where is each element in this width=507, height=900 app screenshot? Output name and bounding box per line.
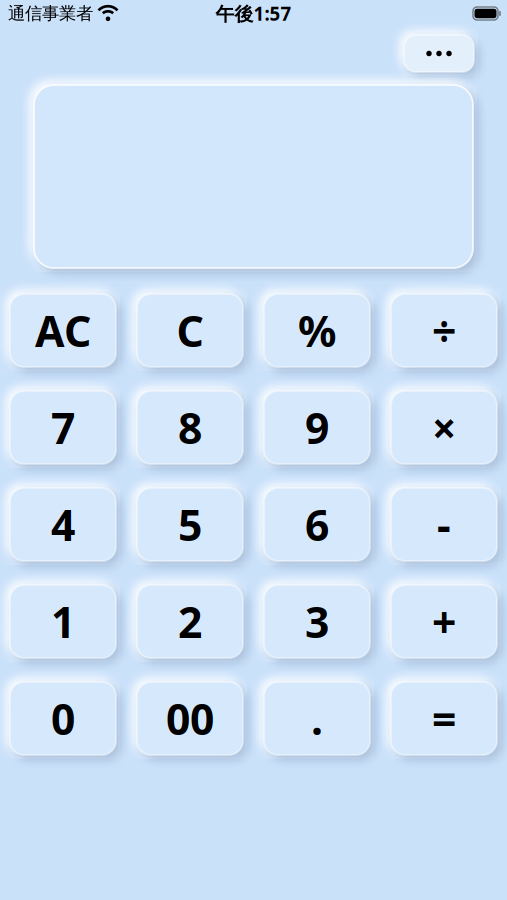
staticText: 7 <box>51 399 75 456</box>
button[interactable]: × <box>391 391 497 464</box>
staticText: 1 <box>51 593 75 650</box>
staticText: 2 <box>178 593 202 650</box>
button[interactable]: 3 <box>264 585 370 658</box>
staticText: C <box>176 302 203 359</box>
button[interactable]: = <box>391 682 497 755</box>
button[interactable]: 8 <box>137 391 243 464</box>
button[interactable]: . <box>264 682 370 755</box>
button[interactable] <box>404 35 474 72</box>
staticText: 8 <box>178 399 202 456</box>
staticText: - <box>437 496 451 553</box>
staticText: 0 <box>51 690 75 747</box>
button[interactable]: - <box>391 488 497 561</box>
staticText: × <box>432 399 456 456</box>
button[interactable]: 00 <box>137 682 243 755</box>
button[interactable]: 4 <box>10 488 116 561</box>
staticText: 9 <box>305 399 329 456</box>
staticText: . <box>311 690 323 747</box>
staticText: = <box>432 690 456 747</box>
staticText: 00 <box>166 690 214 747</box>
button[interactable]: 9 <box>264 391 370 464</box>
button[interactable]: 0 <box>10 682 116 755</box>
staticText: 通信事業者 <box>8 3 93 24</box>
button[interactable]: 5 <box>137 488 243 561</box>
button[interactable]: + <box>391 585 497 658</box>
staticText: AC <box>35 302 91 359</box>
staticText: 6 <box>305 496 329 553</box>
button[interactable]: 6 <box>264 488 370 561</box>
button[interactable]: 7 <box>10 391 116 464</box>
staticText: + <box>432 593 456 650</box>
button[interactable]: AC <box>10 294 116 367</box>
staticText: 午後1:57 <box>215 1 291 26</box>
staticText: % <box>298 302 336 359</box>
button[interactable]: ÷ <box>391 294 497 367</box>
staticText: 5 <box>178 496 202 553</box>
button[interactable]: 2 <box>137 585 243 658</box>
button[interactable]: % <box>264 294 370 367</box>
staticText: 3 <box>305 593 329 650</box>
staticText: 4 <box>51 496 75 553</box>
staticText: ÷ <box>432 302 456 359</box>
button[interactable]: C <box>137 294 243 367</box>
button[interactable]: 1 <box>10 585 116 658</box>
